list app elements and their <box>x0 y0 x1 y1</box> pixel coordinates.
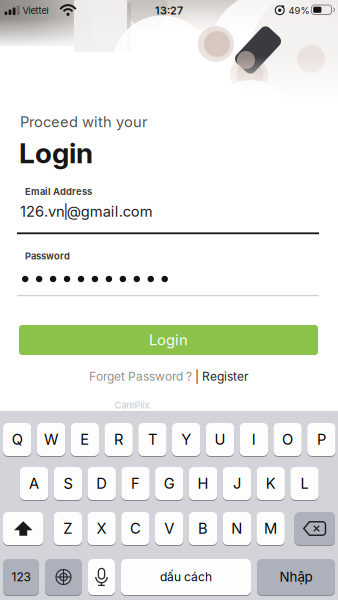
staticText: E <box>80 431 89 448</box>
staticText: Viettel <box>22 5 48 16</box>
button[interactable]: Shift <box>3 512 43 546</box>
button[interactable]: Next keyboard <box>45 559 82 596</box>
button[interactable]: dấu cách <box>121 559 251 596</box>
button[interactable]: I <box>240 423 268 457</box>
staticText: V <box>164 520 174 537</box>
staticText: M <box>264 520 277 537</box>
staticText: W <box>44 431 58 448</box>
button[interactable]: G <box>155 467 183 501</box>
staticText: N <box>231 520 242 537</box>
staticText: Z <box>63 520 72 537</box>
staticText: A <box>29 475 39 492</box>
staticText: S <box>63 475 72 492</box>
button[interactable]: Forget Password ? <box>89 369 192 384</box>
button[interactable]: Dictation <box>88 559 115 596</box>
staticText: | <box>192 369 202 384</box>
staticText: Proceed with your <box>20 113 148 131</box>
button[interactable]: V <box>155 512 183 546</box>
staticText: U <box>214 431 225 448</box>
button[interactable]: W <box>37 423 65 457</box>
staticText: Email Address <box>25 186 92 197</box>
button[interactable]: Login <box>19 325 318 355</box>
staticText: P <box>317 431 326 448</box>
button[interactable]: Y <box>172 423 200 457</box>
button[interactable]: U <box>206 423 234 457</box>
button[interactable]: X <box>87 512 116 546</box>
staticText: 126.vn <box>20 203 65 220</box>
staticText: G <box>164 475 175 492</box>
button[interactable]: Register <box>202 369 249 384</box>
staticText: Y <box>181 431 191 448</box>
staticText: Forget Password ? <box>89 369 192 384</box>
button[interactable]: T <box>138 423 167 457</box>
staticText: I <box>252 431 256 448</box>
button[interactable]: F <box>121 467 150 501</box>
button[interactable]: P <box>307 423 336 457</box>
button[interactable]: H <box>189 467 217 501</box>
staticText: Login <box>149 331 188 349</box>
staticText: F <box>131 475 140 492</box>
staticText: Nhập <box>279 569 312 585</box>
button[interactable]: Delete <box>294 512 335 546</box>
staticText: 49% <box>288 5 309 16</box>
staticText: Q <box>12 431 23 448</box>
staticText: B <box>198 520 208 537</box>
staticText: L <box>300 475 308 492</box>
staticText: D <box>96 475 107 492</box>
staticText: C <box>130 520 141 537</box>
staticText: H <box>198 475 209 492</box>
button[interactable]: 123 <box>3 559 39 596</box>
button[interactable]: Q <box>3 423 31 457</box>
staticText: 123 <box>11 570 30 584</box>
button[interactable]: Z <box>54 512 82 546</box>
staticText: X <box>97 520 107 537</box>
button[interactable]: Email Address <box>17 182 319 237</box>
button[interactable]: Nhập <box>257 559 335 596</box>
staticText: Register <box>202 369 249 384</box>
button[interactable]: J <box>223 467 251 501</box>
button[interactable]: R <box>104 423 133 457</box>
button[interactable]: Password <box>17 248 319 298</box>
button[interactable]: S <box>54 467 82 501</box>
staticText: Password <box>25 250 70 261</box>
button[interactable]: C <box>121 512 150 546</box>
staticText: 13:27 <box>155 4 183 17</box>
staticText: Login <box>19 136 93 169</box>
staticText: R <box>114 431 123 448</box>
staticText: @gmail.com <box>67 203 153 220</box>
button[interactable]: D <box>87 467 116 501</box>
staticText: dấu cách <box>160 570 212 584</box>
button[interactable]: M <box>256 512 285 546</box>
button[interactable]: L <box>290 467 319 501</box>
staticText: T <box>148 431 157 448</box>
button[interactable]: E <box>71 423 99 457</box>
button[interactable]: N <box>223 512 251 546</box>
staticText: J <box>233 475 241 492</box>
button[interactable]: A <box>20 467 48 501</box>
button[interactable]: K <box>256 467 285 501</box>
staticText: CarePlix <box>114 399 149 410</box>
button[interactable]: O <box>273 423 302 457</box>
button[interactable]: B <box>189 512 217 546</box>
staticText: K <box>266 475 276 492</box>
staticText: O <box>282 431 293 448</box>
